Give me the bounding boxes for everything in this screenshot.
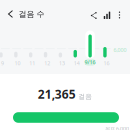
button[interactable]: More options (113, 8, 125, 22)
staticText: 9/16 (85, 59, 96, 66)
staticText: 16 (103, 60, 109, 67)
staticText: 목표 6,000 (105, 125, 129, 130)
button[interactable]: Back (3, 7, 17, 21)
button[interactable]: 걸음 수 (18, 7, 50, 21)
staticText: 21,365 (38, 86, 76, 102)
staticText: 10 (14, 60, 20, 67)
button[interactable]: Share (87, 8, 101, 22)
staticText: 13 (59, 60, 65, 67)
staticText: 9 (1, 60, 4, 67)
staticText: 11 (29, 60, 35, 67)
staticText: 걸음 (78, 92, 92, 101)
staticText: 12 (44, 60, 50, 67)
button[interactable]: Charts (100, 7, 114, 21)
staticText: 걸음 수 (18, 9, 44, 19)
staticText: 6,000 (113, 46, 126, 53)
staticText: 14 (74, 60, 80, 67)
